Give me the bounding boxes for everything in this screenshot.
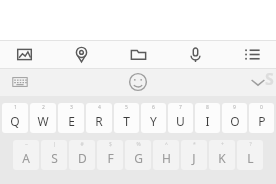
button[interactable]: % xyxy=(125,140,151,170)
staticText: S xyxy=(51,150,58,166)
staticText: 7 xyxy=(179,104,182,111)
button[interactable]: ^ xyxy=(153,140,179,170)
button[interactable]: 7 xyxy=(168,103,193,133)
staticText: S xyxy=(265,68,274,90)
staticText: T xyxy=(123,113,130,129)
button[interactable]: Images xyxy=(12,42,36,66)
button[interactable]: 1 xyxy=(2,103,28,133)
staticText: H xyxy=(162,150,171,166)
button[interactable]: Hide keyboard xyxy=(248,72,268,92)
button[interactable]: $ xyxy=(97,140,123,170)
staticText: O xyxy=(230,113,240,129)
button[interactable]: 2 xyxy=(30,103,56,133)
staticText: I xyxy=(205,113,210,129)
staticText: 2 xyxy=(42,104,45,111)
staticText: U xyxy=(176,113,185,129)
button[interactable]: Files xyxy=(126,42,150,66)
staticText: ^ xyxy=(165,141,168,148)
button[interactable]: 3 xyxy=(58,103,84,133)
staticText: + xyxy=(221,141,224,148)
staticText: 3 xyxy=(70,104,73,111)
staticText: 9 xyxy=(233,104,236,111)
button[interactable]: | xyxy=(41,140,67,170)
staticText: 0 xyxy=(260,104,263,111)
staticText: E xyxy=(68,113,75,129)
button[interactable]: 5 xyxy=(114,103,139,133)
staticText: 8 xyxy=(206,104,209,111)
staticText: 4 xyxy=(98,104,101,111)
staticText: P xyxy=(258,113,266,129)
staticText: ~ xyxy=(25,141,28,148)
staticText: * xyxy=(193,141,196,148)
staticText: J xyxy=(192,150,196,166)
staticText: F xyxy=(107,150,114,166)
staticText: G xyxy=(134,150,143,166)
staticText: % xyxy=(136,141,141,148)
staticText: ? xyxy=(249,141,252,148)
staticText: | xyxy=(53,141,56,148)
button[interactable]: * xyxy=(181,140,207,170)
button[interactable]: Emoji xyxy=(127,71,149,93)
staticText: 1 xyxy=(14,104,17,111)
staticText: D xyxy=(78,150,87,166)
staticText: $ xyxy=(109,141,112,148)
button[interactable]: Location xyxy=(69,42,93,66)
button[interactable]: ~ xyxy=(13,140,39,170)
button[interactable]: Keyboard settings xyxy=(10,72,30,92)
button[interactable]: 0 xyxy=(249,103,274,133)
staticText: W xyxy=(37,113,49,129)
staticText: Y xyxy=(150,113,157,129)
button[interactable]: 8 xyxy=(195,103,220,133)
button[interactable]: 4 xyxy=(86,103,112,133)
button[interactable]: + xyxy=(209,140,235,170)
staticText: 6 xyxy=(152,104,155,111)
button[interactable]: Voice input xyxy=(183,42,207,66)
staticText: Q xyxy=(10,113,20,129)
staticText: 5 xyxy=(125,104,128,111)
button[interactable]: Clipboard xyxy=(240,42,264,66)
button[interactable]: # xyxy=(69,140,95,170)
staticText: # xyxy=(80,141,84,148)
staticText: A xyxy=(22,150,30,166)
staticText: L xyxy=(247,150,254,166)
button[interactable]: 6 xyxy=(141,103,166,133)
staticText: R xyxy=(95,113,103,129)
button[interactable]: ? xyxy=(237,140,263,170)
button[interactable]: 9 xyxy=(222,103,247,133)
staticText: K xyxy=(218,150,226,166)
